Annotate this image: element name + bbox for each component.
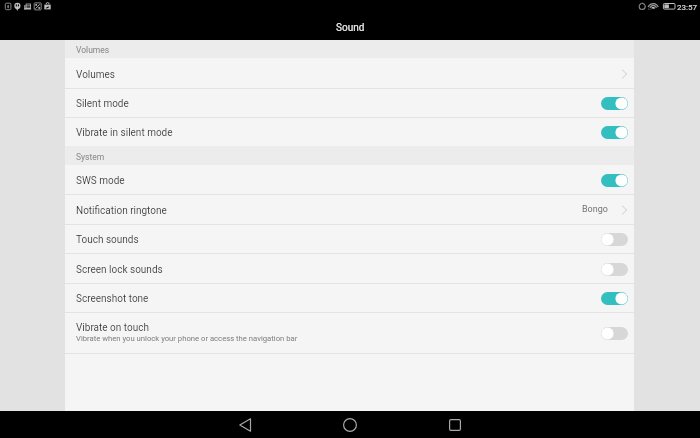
staticText: Screen lock sounds [76,264,163,276]
button[interactable]: Back [232,411,258,438]
button[interactable]: Switch off [600,326,628,340]
button[interactable]: Switch on [600,291,628,305]
button[interactable]: Home [337,411,363,438]
button[interactable]: Screen lock sounds [65,254,634,283]
staticText: 23:57 [677,3,697,12]
button[interactable]: Notification ringtone [65,195,634,224]
staticText: Notification ringtone [76,205,167,217]
button[interactable]: Switch on [600,96,628,110]
button[interactable]: Recents [442,411,468,438]
staticText: Vibrate in silent mode [76,127,173,139]
button[interactable]: Vibrate on touch [65,313,634,353]
staticText: Touch sounds [76,234,139,246]
staticText: Screenshot tone [76,293,149,305]
staticText: Silent mode [76,98,129,110]
staticText: Volumes [76,69,116,81]
staticText: Bongo [582,204,608,215]
staticText: Vibrate on touch [76,322,149,334]
button[interactable]: Switch off [600,232,628,246]
button[interactable]: Silent mode [65,89,634,117]
button[interactable]: SWS mode [65,166,634,194]
staticText: Sound [336,22,365,34]
button[interactable]: Touch sounds [65,225,634,253]
button[interactable]: Screenshot tone [65,284,634,312]
button[interactable]: Switch on [600,173,628,187]
staticText: Volumes [76,45,110,55]
staticText: System [76,152,105,162]
button[interactable]: Volumes [65,59,634,88]
button[interactable]: Vibrate in silent mode [65,118,634,146]
button[interactable]: Switch on [600,125,628,139]
button[interactable]: Switch off [600,262,628,276]
staticText: Vibrate when you unlock your phone or ac… [76,334,298,343]
staticText: SWS mode [76,175,125,187]
